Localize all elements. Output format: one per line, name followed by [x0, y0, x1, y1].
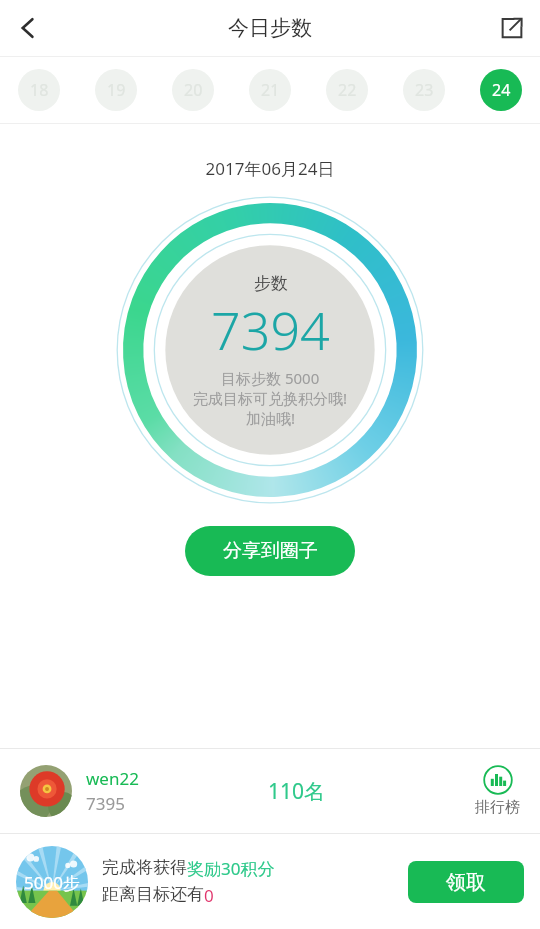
staticText: 完成将获得	[102, 857, 187, 878]
staticText: 23	[415, 79, 434, 101]
staticText: 步数	[254, 273, 288, 294]
staticText: 完成目标可兑换积分哦!	[193, 388, 348, 408]
staticText: 110名	[268, 777, 326, 806]
button[interactable]: Back	[0, 0, 56, 56]
staticText: 领取	[446, 870, 486, 895]
button[interactable]: 21	[249, 69, 291, 111]
staticText: wen22	[86, 767, 139, 790]
staticText: 5000步	[24, 871, 80, 894]
staticText: 分享到圈子	[223, 539, 318, 563]
button[interactable]: 24	[480, 69, 522, 111]
staticText: 18	[30, 79, 49, 101]
staticText: 20	[184, 79, 203, 101]
button[interactable]: 分享到圈子	[185, 526, 355, 576]
staticText: 22	[338, 79, 357, 101]
button[interactable]: 23	[403, 69, 445, 111]
button[interactable]: 排行榜	[475, 765, 520, 817]
button[interactable]: 22	[326, 69, 368, 111]
staticText: 今日步数	[228, 15, 312, 41]
staticText: 目标步数 5000	[221, 368, 320, 388]
staticText: 7394	[211, 294, 330, 365]
button[interactable]: 18	[18, 69, 60, 111]
staticText: 24	[492, 79, 511, 101]
button[interactable]: 19	[95, 69, 137, 111]
staticText: 0	[204, 884, 214, 907]
staticText: 21	[261, 79, 280, 101]
staticText: 7395	[86, 792, 125, 815]
staticText: 19	[107, 79, 126, 101]
button[interactable]: Share	[484, 0, 540, 56]
staticText: 距离目标还有	[102, 884, 204, 905]
staticText: 排行榜	[475, 798, 520, 817]
button[interactable]: 领取	[408, 861, 524, 903]
button[interactable]: wen22	[0, 749, 540, 833]
staticText: 奖励30积分	[187, 857, 275, 880]
button[interactable]: 20	[172, 69, 214, 111]
staticText: 加油哦!	[246, 408, 296, 428]
staticText: 2017年06月24日	[0, 157, 540, 180]
